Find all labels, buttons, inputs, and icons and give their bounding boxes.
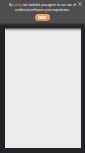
button[interactable]	[78, 2, 82, 6]
staticText: OKAY	[38, 16, 47, 20]
button[interactable]: OKAY	[35, 14, 50, 21]
staticText: By using our website you agree to our us…	[9, 3, 76, 7]
staticText: cookies to enhance your experience.	[15, 8, 70, 12]
